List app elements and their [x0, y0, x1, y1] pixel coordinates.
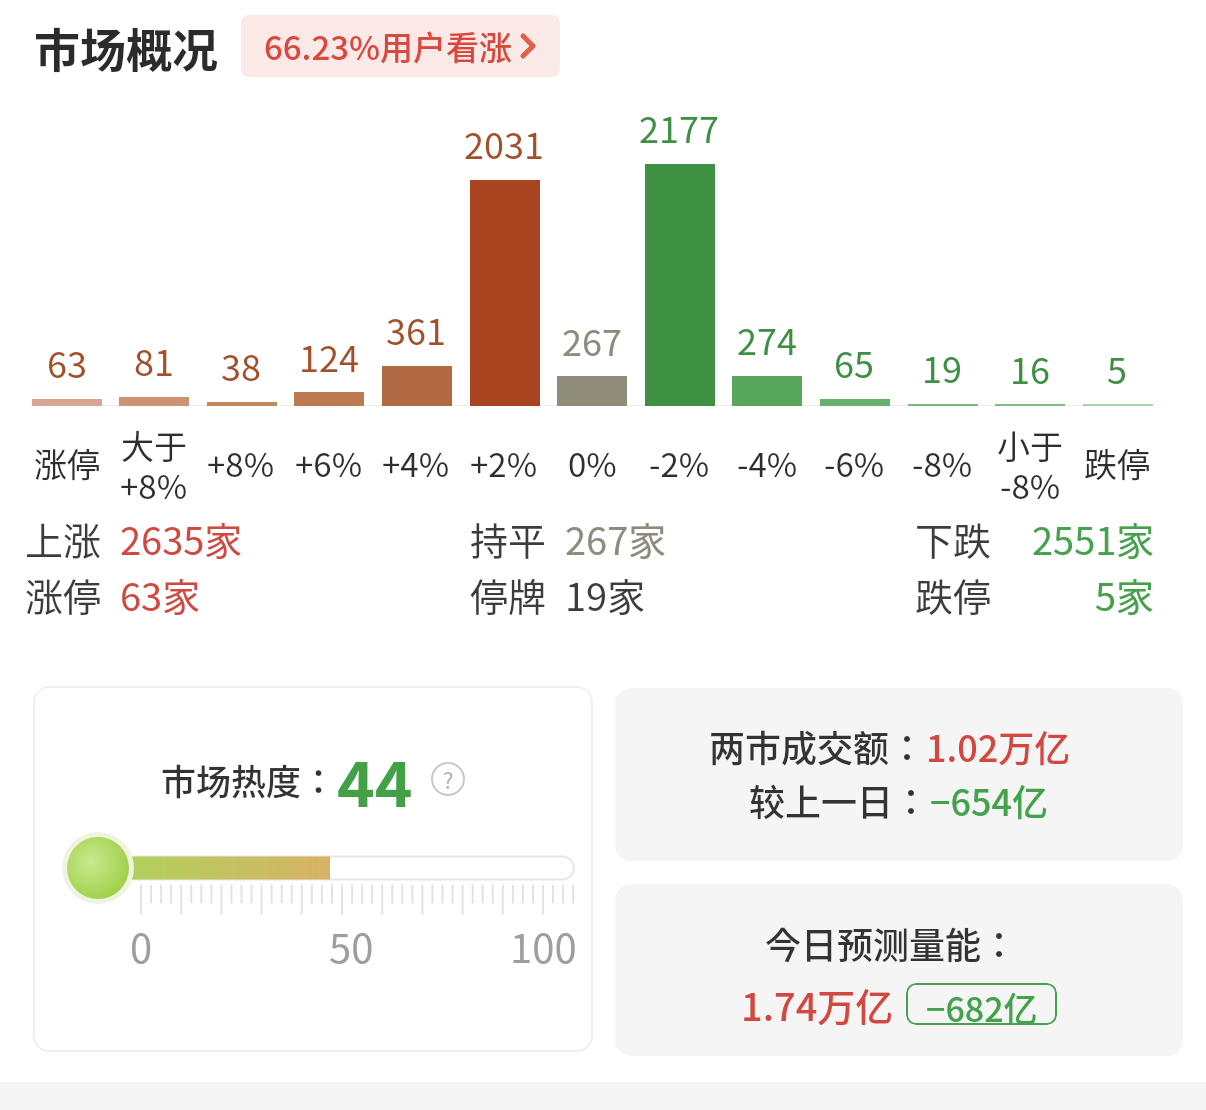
staticText: 涨停: [34, 439, 100, 483]
staticText: 66.23%用户看涨: [264, 22, 513, 70]
staticText: +8%: [207, 439, 275, 483]
staticText: 2635家: [120, 511, 243, 563]
staticText: 38: [221, 339, 261, 383]
staticText: 63家: [120, 567, 201, 619]
staticText: -2%: [649, 439, 710, 483]
staticText: 两市成交额：: [709, 720, 926, 772]
staticText: 2177: [639, 101, 719, 145]
staticText: 19家: [565, 567, 646, 619]
staticText: 361: [386, 303, 446, 347]
staticText: 63: [47, 336, 87, 380]
staticText: 2551家: [1032, 511, 1155, 563]
staticText: 267: [562, 314, 622, 358]
staticText: 较上一日：: [749, 774, 930, 826]
staticText: 124: [299, 330, 359, 374]
staticText: 44: [337, 735, 413, 807]
staticText: 81: [134, 334, 174, 378]
staticText: +4%: [382, 439, 450, 483]
staticText: 100: [510, 917, 577, 969]
staticText: 0%: [568, 439, 617, 483]
staticText: +6%: [295, 439, 363, 483]
staticText: 上涨: [25, 511, 102, 563]
staticText: −682亿: [926, 983, 1038, 1025]
staticText: -8%: [1000, 461, 1061, 503]
staticText: +2%: [470, 439, 538, 483]
staticText: −654亿: [930, 774, 1049, 826]
staticText: -4%: [737, 439, 798, 483]
staticText: 今日预测量能：: [765, 917, 1018, 969]
staticText: 停牌: [470, 567, 547, 619]
staticText: 65: [834, 336, 874, 380]
staticText: 0: [130, 917, 153, 969]
button[interactable]: 今日预测量能：: [615, 884, 1183, 1056]
button[interactable]: 市场热度：: [33, 686, 593, 1052]
staticText: 小于: [997, 421, 1063, 463]
staticText: 19: [922, 341, 962, 385]
staticText: 持平: [470, 511, 547, 563]
staticText: 涨停: [25, 567, 102, 619]
staticText: 5: [1107, 342, 1127, 386]
staticText: 市场热度：: [161, 754, 337, 805]
staticText: 跌停: [915, 567, 992, 619]
staticText: 1.74万亿: [741, 977, 894, 1032]
staticText: 274: [737, 313, 797, 357]
staticText: -6%: [824, 439, 885, 483]
staticText: 267家: [565, 511, 667, 563]
staticText: ?: [443, 763, 454, 795]
staticText: 跌停: [1084, 439, 1150, 483]
staticText: 2031: [464, 117, 544, 161]
button[interactable]: 两市成交额：: [615, 688, 1183, 861]
staticText: 市场概况: [34, 14, 218, 74]
staticText: 1.02万亿: [926, 720, 1071, 772]
staticText: -8%: [912, 439, 973, 483]
staticText: 大于: [121, 421, 187, 463]
button[interactable]: 66.23%用户看涨: [241, 15, 560, 77]
staticText: +8%: [120, 461, 188, 503]
staticText: 50: [329, 917, 374, 969]
staticText: 5家: [1095, 567, 1155, 619]
staticText: 16: [1010, 342, 1050, 386]
staticText: 下跌: [915, 511, 992, 563]
